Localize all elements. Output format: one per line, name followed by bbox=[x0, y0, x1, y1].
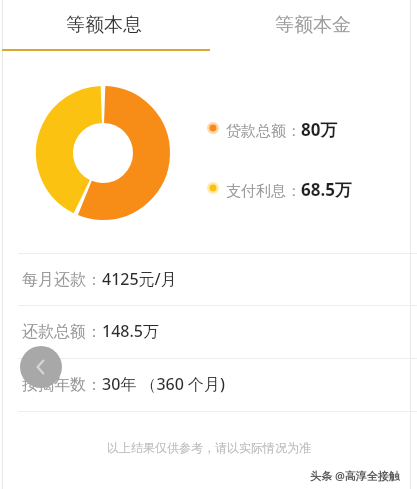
staticText: 等额本息 bbox=[66, 13, 142, 37]
staticText: 等额本金 bbox=[275, 13, 351, 37]
staticText: 以上结果仅供参考，请以实际情况为准 bbox=[107, 440, 311, 455]
button[interactable]: 还款总额：148.5万 bbox=[0, 305, 417, 357]
button[interactable]: 等额本金 bbox=[208, 0, 417, 50]
staticText: 每月还款：4125元/月 bbox=[22, 268, 177, 290]
button[interactable]: 每月还款：4125元/月 bbox=[0, 253, 417, 305]
button[interactable]: Back bbox=[20, 346, 62, 388]
staticText: 头条 @高淳全接触 bbox=[310, 468, 400, 483]
button[interactable]: 等额本息 bbox=[0, 0, 208, 50]
staticText: 按揭年数：30年 （360 个月) bbox=[22, 373, 226, 395]
staticText: 支付利息：68.5万 bbox=[226, 178, 352, 198]
staticText: 贷款总额：80万 bbox=[226, 118, 338, 138]
staticText: 还款总额：148.5万 bbox=[22, 320, 159, 342]
button[interactable]: 按揭年数：30年 （360 个月) bbox=[0, 358, 417, 410]
